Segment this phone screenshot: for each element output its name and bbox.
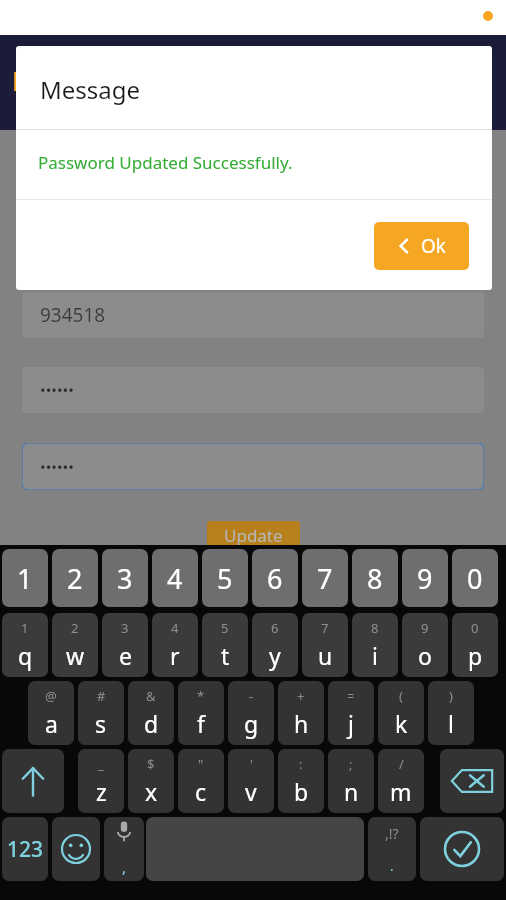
button[interactable]: 6	[252, 613, 298, 677]
button[interactable]: 0	[452, 613, 498, 677]
staticText: 7	[317, 560, 333, 597]
button[interactable]: Symbols	[2, 817, 48, 881]
button[interactable]: "	[178, 749, 224, 813]
button[interactable]: 934518	[22, 292, 484, 338]
staticText: 6	[267, 560, 283, 597]
staticText: 4	[171, 619, 179, 637]
staticText: i	[372, 640, 378, 671]
staticText: l	[448, 708, 454, 739]
staticText: 0	[471, 619, 479, 637]
staticText: 9	[421, 619, 429, 637]
staticText: b	[294, 776, 309, 807]
staticText: j	[348, 708, 354, 739]
button[interactable]: ••••••	[22, 443, 484, 490]
button[interactable]: Period	[368, 817, 416, 881]
button[interactable]: -	[228, 681, 274, 745]
button[interactable]: 4	[152, 549, 198, 607]
button[interactable]: )	[428, 681, 474, 745]
staticText: h	[294, 708, 309, 739]
staticText: 3	[117, 560, 133, 597]
staticText: ,!?	[385, 824, 399, 843]
button[interactable]: 1	[2, 549, 48, 607]
staticText: -	[249, 687, 254, 705]
button[interactable]: 8	[352, 613, 398, 677]
staticText: 2	[71, 619, 79, 637]
button[interactable]: =	[328, 681, 374, 745]
staticText: 7	[321, 619, 329, 637]
staticText: a	[45, 708, 58, 739]
staticText: B	[12, 62, 30, 99]
staticText: t	[221, 640, 230, 671]
button[interactable]: (	[378, 681, 424, 745]
staticText: ,	[122, 857, 127, 877]
staticText: 9	[417, 560, 433, 597]
button[interactable]: 4	[152, 613, 198, 677]
staticText: 934518	[40, 302, 106, 328]
staticText: 6	[271, 619, 279, 637]
staticText: Password Updated Successfully.	[38, 151, 293, 174]
staticText: Ok	[421, 233, 446, 259]
button[interactable]: &	[128, 681, 174, 745]
button[interactable]: Space	[146, 817, 364, 881]
staticText: 3	[121, 619, 129, 637]
button[interactable]: *	[178, 681, 224, 745]
staticText: g	[244, 708, 259, 739]
button[interactable]: 3	[102, 613, 148, 677]
staticText: y	[269, 640, 281, 671]
button[interactable]: '	[228, 749, 274, 813]
button[interactable]: 0	[452, 549, 498, 607]
button[interactable]: :	[278, 749, 324, 813]
button[interactable]: ;	[328, 749, 374, 813]
button[interactable]: 2	[52, 549, 98, 607]
staticText: &	[146, 687, 156, 705]
staticText: _	[98, 755, 104, 773]
button[interactable]: +	[278, 681, 324, 745]
button[interactable]: 9	[402, 613, 448, 677]
staticText: 4	[167, 560, 183, 597]
staticText: +	[297, 687, 305, 705]
staticText: 8	[371, 619, 379, 637]
button[interactable]: 3	[102, 549, 148, 607]
staticText: .	[390, 857, 394, 875]
button[interactable]: Update	[207, 521, 300, 549]
button[interactable]: 1	[2, 613, 48, 677]
staticText: z	[96, 776, 107, 807]
button[interactable]: /	[378, 749, 424, 813]
button[interactable]: $	[128, 749, 174, 813]
staticText: n	[344, 776, 359, 807]
staticText: 5	[221, 619, 229, 637]
button[interactable]: @	[28, 681, 74, 745]
button[interactable]: 5	[202, 549, 248, 607]
button[interactable]: 2	[52, 613, 98, 677]
button[interactable]: _	[78, 749, 124, 813]
staticText: k	[395, 708, 408, 739]
button[interactable]: Enter	[420, 817, 504, 881]
button[interactable]: 5	[202, 613, 248, 677]
button[interactable]: Shift	[2, 749, 64, 813]
staticText: f	[197, 708, 205, 739]
button[interactable]: 9	[402, 549, 448, 607]
staticText: /	[399, 755, 404, 773]
staticText: d	[144, 708, 159, 739]
button[interactable]: 7	[302, 613, 348, 677]
staticText: u	[318, 640, 333, 671]
button[interactable]: Backspace	[440, 749, 504, 813]
button[interactable]: 6	[252, 549, 298, 607]
button[interactable]: #	[78, 681, 124, 745]
button[interactable]: 7	[302, 549, 348, 607]
button[interactable]: 8	[352, 549, 398, 607]
staticText: 5	[217, 560, 233, 597]
staticText: 123	[7, 835, 44, 864]
staticText: e	[119, 640, 132, 671]
staticText: :	[299, 755, 303, 773]
staticText: "	[198, 755, 204, 773]
button[interactable]: Ok	[374, 222, 469, 270]
button[interactable]: Voice input	[104, 817, 144, 881]
staticText: $	[147, 755, 155, 773]
staticText: o	[418, 640, 432, 671]
staticText: 1	[21, 619, 29, 637]
button[interactable]: ••••••	[22, 367, 484, 413]
button[interactable]: Emoji	[52, 817, 100, 881]
staticText: m	[390, 776, 412, 807]
staticText: =	[347, 687, 355, 705]
